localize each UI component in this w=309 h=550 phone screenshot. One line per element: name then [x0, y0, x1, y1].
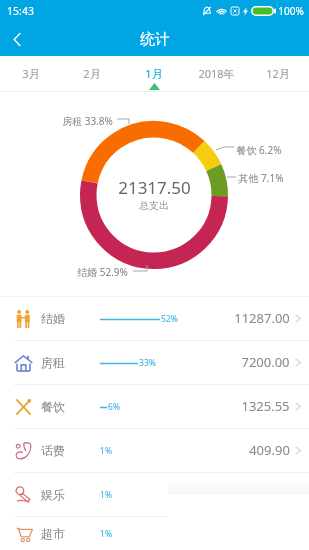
button[interactable]: 超市: [0, 517, 309, 550]
staticText: 话费: [41, 443, 65, 458]
staticText: 52%: [161, 313, 178, 325]
staticText: 21317.50: [118, 176, 191, 199]
staticText: 房租 33.8%: [62, 114, 113, 128]
button[interactable]: 12月: [247, 56, 309, 92]
staticText: 6%: [108, 401, 120, 413]
staticText: 12月: [266, 66, 290, 81]
staticText: 房租: [41, 355, 65, 370]
staticText: 100%: [278, 4, 304, 18]
staticText: 7200.00: [241, 353, 290, 371]
button[interactable]: 房租: [0, 341, 309, 385]
button[interactable]: 娱乐: [0, 473, 309, 517]
staticText: 娱乐: [41, 487, 65, 502]
staticText: 其他 7.1%: [238, 171, 284, 185]
staticText: 15:43: [7, 4, 34, 18]
staticText: 2月: [83, 66, 101, 81]
button[interactable]: 话费: [0, 429, 309, 473]
button[interactable]: 3月: [0, 56, 61, 92]
button[interactable]: 餐饮: [0, 385, 309, 429]
button[interactable]: 1月: [123, 56, 185, 92]
staticText: 1%: [100, 445, 112, 457]
staticText: 3月: [22, 66, 40, 81]
staticText: 1%: [100, 489, 112, 501]
staticText: 超市: [41, 526, 65, 541]
staticText: 1月: [145, 66, 163, 81]
staticText: 33%: [139, 357, 156, 369]
button[interactable]: 2月: [61, 56, 123, 92]
staticText: 1%: [100, 528, 112, 540]
staticText: 结婚: [41, 311, 65, 326]
staticText: 409.90: [249, 441, 290, 459]
staticText: 统计: [140, 30, 170, 49]
staticText: 2018年: [198, 66, 235, 81]
staticText: 总支出: [139, 199, 169, 212]
staticText: 1325.55: [241, 397, 290, 415]
staticText: 餐饮: [41, 399, 65, 414]
button[interactable]: 结婚: [0, 297, 309, 341]
button[interactable]: 2018年: [185, 56, 247, 92]
button[interactable]: Back: [0, 22, 34, 56]
staticText: 11287.00: [234, 309, 290, 327]
staticText: 餐饮 6.2%: [236, 143, 282, 157]
staticText: 结婚 52.9%: [77, 265, 128, 279]
